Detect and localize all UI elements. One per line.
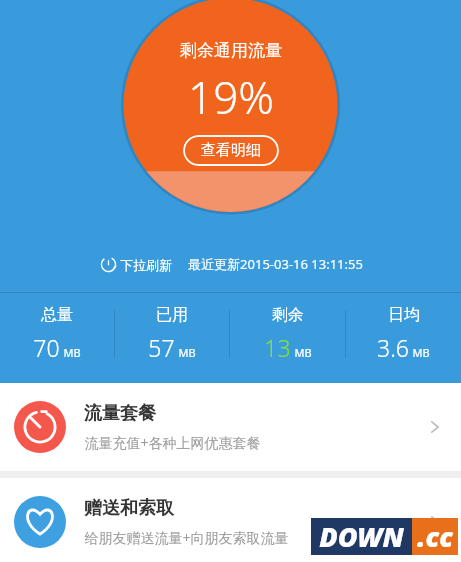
staticText: 给朋友赠送流量+向朋友索取流量 bbox=[84, 528, 289, 547]
staticText: 日均 bbox=[388, 305, 420, 325]
staticText: 赠送和索取 bbox=[84, 497, 174, 520]
button[interactable]: 日均 bbox=[346, 305, 461, 363]
staticText: 57 bbox=[148, 332, 175, 363]
staticText: 最近更新2015-03-16 13:11:55 bbox=[188, 255, 363, 273]
staticText: 19% bbox=[188, 67, 274, 127]
staticText: 剩余通用流量 bbox=[180, 40, 282, 61]
staticText: 3.6 bbox=[377, 332, 409, 363]
button[interactable]: 总量 bbox=[0, 305, 114, 363]
button[interactable]: 查看明细 bbox=[183, 135, 279, 166]
button[interactable]: 流量套餐 bbox=[0, 383, 461, 471]
staticText: 下拉刷新 bbox=[120, 257, 172, 273]
staticText: 总量 bbox=[41, 305, 73, 325]
staticText: .cc bbox=[417, 518, 453, 555]
button[interactable]: 已用 bbox=[115, 305, 229, 363]
staticText: MB bbox=[294, 345, 312, 360]
staticText: 13 bbox=[264, 332, 291, 363]
staticText: 流量充值+各种上网优惠套餐 bbox=[84, 433, 261, 452]
button[interactable]: 下拉刷新 bbox=[98, 254, 174, 275]
staticText: 70 bbox=[33, 332, 60, 363]
staticText: 流量套餐 bbox=[84, 402, 156, 425]
button[interactable]: Remaining data gauge 19 percent bbox=[0, 0, 461, 215]
staticText: MB bbox=[412, 345, 430, 360]
button[interactable]: 赠送和索取 bbox=[0, 478, 461, 562]
staticText: 剩余 bbox=[272, 305, 304, 325]
staticText: 查看明细 bbox=[201, 141, 261, 160]
button[interactable]: 剩余 bbox=[230, 305, 345, 363]
staticText: MB bbox=[63, 345, 81, 360]
staticText: 已用 bbox=[156, 305, 188, 325]
staticText: MB bbox=[178, 345, 196, 360]
staticText: DOWN bbox=[319, 518, 404, 555]
